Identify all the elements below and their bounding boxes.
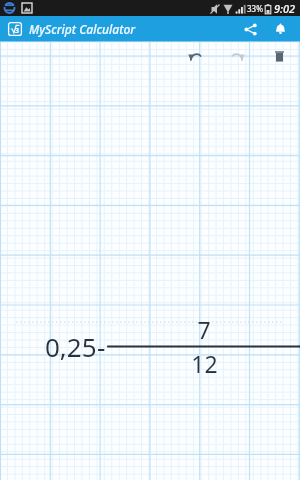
staticText: MyScript Calculator — [29, 21, 136, 37]
staticText: - — [97, 329, 106, 364]
staticText: 3 — [15, 26, 20, 36]
staticText: 9:02 — [274, 1, 296, 16]
button[interactable]: Share — [235, 16, 265, 42]
button[interactable]: Delete — [265, 42, 293, 70]
button[interactable]: Undo — [179, 42, 211, 70]
button[interactable]: Notifications — [265, 16, 295, 42]
staticText: 0,25 — [45, 329, 97, 364]
button[interactable]: Redo — [222, 42, 254, 70]
staticText: 12 — [191, 348, 218, 379]
staticText: 7 — [197, 314, 211, 345]
staticText: 33% — [247, 3, 263, 14]
